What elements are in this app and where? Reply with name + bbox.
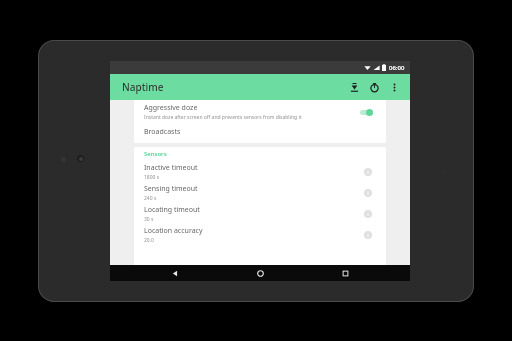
- staticText: Sensors: [144, 150, 167, 158]
- staticText: 1800 s: [144, 174, 160, 181]
- button[interactable]: Broadcasts: [134, 124, 386, 140]
- button[interactable]: Location accuracy: [134, 224, 386, 245]
- button[interactable]: Timer: [364, 77, 384, 97]
- button[interactable]: Info about Inactive timeout: [360, 164, 376, 180]
- staticText: 20.0: [144, 237, 154, 244]
- button[interactable]: Locating timeout: [134, 203, 386, 224]
- staticText: Broadcasts: [144, 127, 181, 137]
- staticText: 30 s: [144, 216, 154, 223]
- button[interactable]: Home: [240, 265, 280, 281]
- button[interactable]: Sensing timeout: [134, 182, 386, 203]
- button[interactable]: Recent apps: [325, 265, 365, 281]
- staticText: Instant doze after screen off and preven…: [144, 114, 302, 121]
- button[interactable]: Info about Locating timeout: [360, 206, 376, 222]
- staticText: Aggressive doze: [144, 103, 198, 113]
- button[interactable]: Import settings: [344, 77, 364, 97]
- staticText: Inactive timeout: [144, 163, 198, 173]
- button[interactable]: More options: [384, 77, 404, 97]
- staticText: 06:00: [389, 64, 405, 72]
- staticText: Location accuracy: [144, 226, 203, 236]
- button[interactable]: Aggressive doze toggle: [358, 105, 376, 119]
- button[interactable]: Aggressive doze: [134, 100, 386, 124]
- button[interactable]: Inactive timeout: [134, 161, 386, 182]
- button[interactable]: Info about Sensing timeout: [360, 185, 376, 201]
- button[interactable]: Back: [155, 265, 195, 281]
- staticText: Locating timeout: [144, 205, 200, 215]
- staticText: Sensing timeout: [144, 184, 198, 194]
- button[interactable]: Info about Location accuracy: [360, 227, 376, 243]
- staticText: Naptime: [122, 80, 164, 94]
- staticText: 240 s: [144, 195, 157, 202]
